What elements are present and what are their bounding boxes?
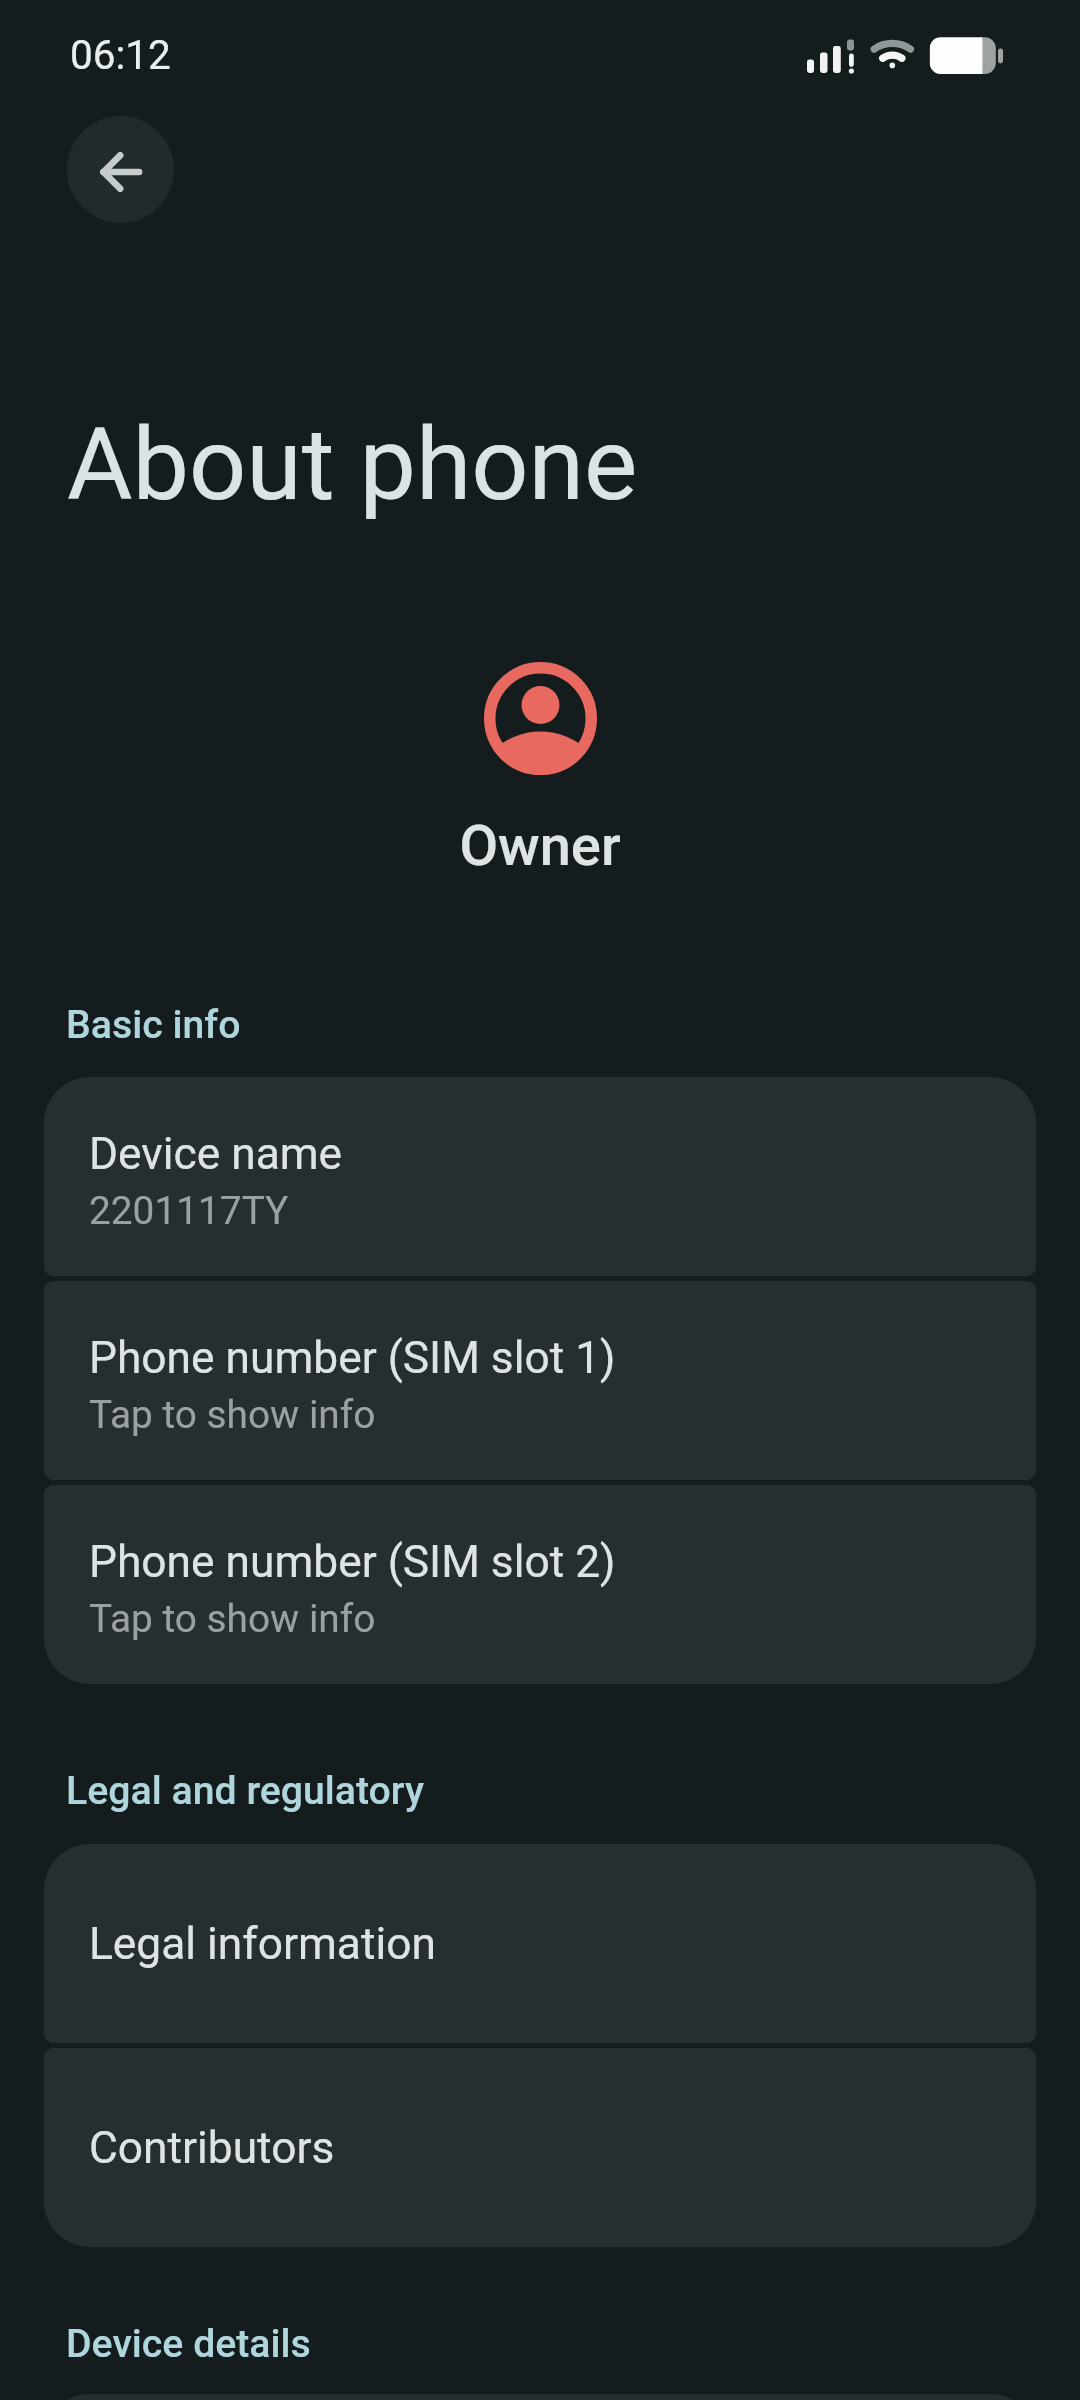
button[interactable]: Device name: [44, 1077, 1036, 1276]
button[interactable]: Legal information: [44, 1844, 1036, 2043]
staticText: Tap to show info: [89, 1596, 376, 1641]
staticText: Phone number (SIM slot 2): [89, 1536, 616, 1588]
button[interactable]: Contributors: [44, 2048, 1036, 2247]
staticText: 2201117TY: [89, 1188, 289, 1233]
button[interactable]: Model: [44, 2394, 1036, 2400]
staticText: About phone: [67, 406, 638, 524]
staticText: Device name: [89, 1128, 343, 1180]
button[interactable]: Phone number (SIM slot 2): [44, 1485, 1036, 1684]
button[interactable]: Phone number (SIM slot 1): [44, 1281, 1036, 1480]
staticText: 06:12: [70, 31, 171, 78]
staticText: Basic info: [66, 1002, 241, 1048]
staticText: Contributors: [89, 2122, 335, 2174]
staticText: Legal and regulatory: [66, 1768, 425, 1814]
staticText: Device details: [66, 2321, 311, 2367]
button[interactable]: Back: [67, 116, 174, 223]
staticText: Legal information: [89, 1918, 436, 1970]
staticText: Phone number (SIM slot 1): [89, 1332, 616, 1384]
staticText: Tap to show info: [89, 1392, 376, 1437]
staticText: Owner: [0, 813, 1080, 879]
